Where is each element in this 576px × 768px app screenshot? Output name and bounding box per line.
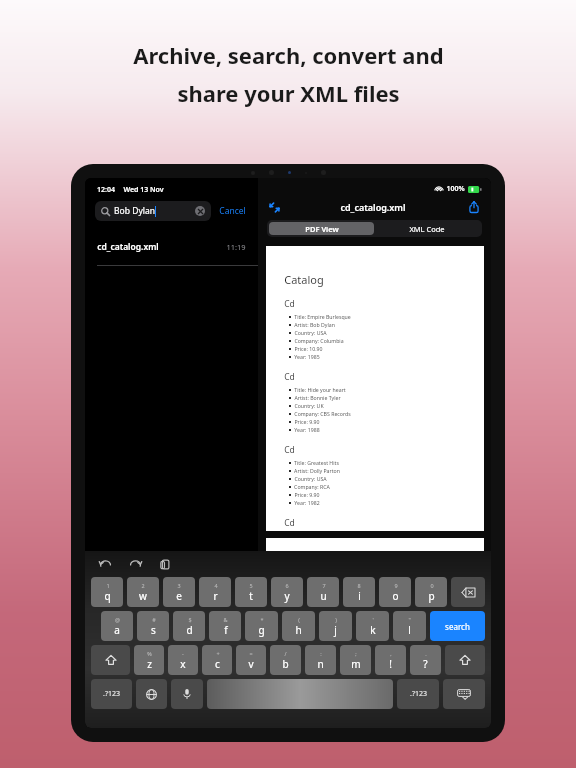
staticText: .?123 [103,689,120,699]
button[interactable]: * [245,611,278,641]
button[interactable]: 1 [91,577,123,607]
button[interactable]: Redo [127,556,143,572]
staticText: x [180,657,186,671]
staticText: m [351,657,361,671]
staticText: b [282,657,289,671]
staticText: r [213,589,218,603]
button[interactable]: Paste [157,556,173,572]
staticText: = [249,650,253,657]
button[interactable]: Clear [195,206,205,216]
staticText: z [147,657,152,671]
button[interactable]: .?123 [397,679,439,709]
button[interactable]: = [236,645,266,675]
staticText: Cd [284,298,295,310]
button[interactable]: 9 [379,577,411,607]
staticText: Cd [284,371,295,383]
button[interactable]: + [202,645,232,675]
staticText: 12:04 [97,185,115,195]
button[interactable]: Shift [91,645,130,675]
staticText: k [370,623,376,637]
staticText: cd_catalog.xml [97,241,159,253]
staticText: $ [188,616,192,623]
staticText: q [104,589,111,603]
button[interactable]: . [410,645,441,675]
staticText: o [392,589,399,603]
staticText: cd_catalog.xml [340,201,406,213]
staticText: # [152,616,156,623]
button[interactable]: Dictation [171,679,203,709]
staticText: Country: UK [294,402,324,409]
button[interactable]: Shift [445,645,485,675]
button[interactable]: , [375,645,406,675]
button[interactable]: Expand [267,200,281,214]
staticText: 11:19 [226,242,246,252]
button[interactable]: 5 [235,577,267,607]
staticText: d [186,623,193,637]
staticText: 1 [106,582,110,589]
staticText: l [408,623,411,637]
button[interactable]: Bob Dylan [95,201,211,221]
button[interactable]: 0 [415,577,447,607]
staticText: Year: 1982 [294,499,320,506]
button[interactable]: ) [319,611,352,641]
staticText: - [182,650,184,657]
button[interactable]: " [393,611,426,641]
button[interactable]: $ [173,611,205,641]
button[interactable]: Cancel [217,203,248,219]
button[interactable]: 4 [199,577,231,607]
button[interactable]: @ [101,611,133,641]
button[interactable]: 6 [271,577,303,607]
staticText: + [216,650,220,657]
button[interactable]: ; [340,645,371,675]
staticText: Artist: Bob Dylan [294,321,335,328]
staticText: Country: USA [294,329,327,336]
staticText: Artist: Dolly Parton [294,467,340,474]
button[interactable]: - [168,645,198,675]
staticText: 100% [446,184,465,194]
staticText: % [147,650,152,657]
staticText: Company: CBS Records [294,410,351,417]
button[interactable]: Space [207,679,393,709]
button[interactable]: Hide keyboard [443,679,485,709]
staticText: Year: 1988 [294,426,320,433]
button[interactable]: search [430,611,485,641]
button[interactable]: & [209,611,241,641]
button[interactable]: 3 [163,577,195,607]
button[interactable]: 7 [307,577,339,607]
staticText: j [334,623,337,637]
staticText: search [445,621,470,632]
staticText: Title: Hide your heart [294,386,346,393]
button[interactable]: # [137,611,169,641]
staticText: 9 [394,582,398,589]
button[interactable]: cd_catalog.xml [85,229,258,265]
button[interactable]: Language [136,679,167,709]
staticText: " [408,616,411,623]
button[interactable]: : [305,645,336,675]
staticText: p [428,589,435,603]
staticText: g [258,623,265,637]
staticText: u [320,589,327,603]
staticText: 0 [430,582,434,589]
staticText: Wed 13 Nov [123,185,164,195]
button[interactable]: ' [356,611,389,641]
staticText: 4 [214,582,218,589]
button[interactable]: % [134,645,164,675]
staticText: Year: 1985 [294,353,320,360]
staticText: Title: Greatest Hits [294,459,339,466]
staticText: PDF View [305,224,339,234]
staticText: & [223,616,228,623]
button[interactable]: ( [282,611,315,641]
button[interactable]: Delete [451,577,485,607]
button[interactable]: 2 [127,577,159,607]
staticText: Price: 9.90 [294,491,320,498]
staticText: ( [298,616,300,623]
button[interactable]: PDF View [269,222,374,235]
button[interactable]: / [270,645,301,675]
staticText: @ [115,616,120,623]
staticText: 5 [249,582,253,589]
button[interactable]: XML Code [374,222,480,235]
button[interactable]: Share [466,199,482,215]
button[interactable]: Undo [97,556,113,572]
button[interactable]: .?123 [91,679,132,709]
button[interactable]: 8 [343,577,375,607]
